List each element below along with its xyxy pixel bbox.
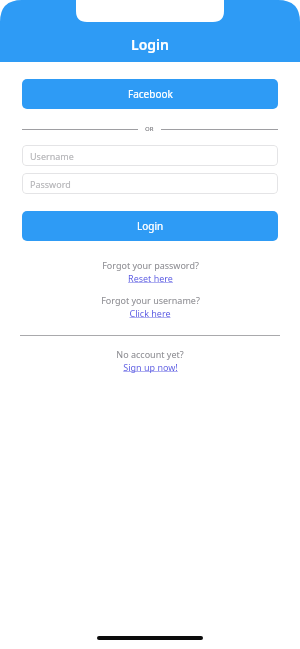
button[interactable]: Facebook xyxy=(22,79,278,109)
staticText: Reset here xyxy=(128,272,173,284)
staticText: Username xyxy=(30,150,74,162)
button[interactable]: Click here xyxy=(129,307,171,319)
button[interactable]: Username xyxy=(22,145,278,166)
button[interactable]: Reset here xyxy=(128,272,173,284)
staticText: Login xyxy=(137,219,164,233)
staticText: Click here xyxy=(129,307,171,319)
button[interactable]: Sign up now! xyxy=(123,361,178,373)
staticText: Sign up now! xyxy=(123,361,178,373)
button[interactable]: Login xyxy=(22,211,278,241)
staticText: OR xyxy=(145,125,154,133)
staticText: Login xyxy=(131,35,169,54)
staticText: Password xyxy=(30,178,71,190)
staticText: No account yet? xyxy=(116,348,184,360)
button[interactable]: Password xyxy=(22,173,278,194)
staticText: Forgot your username? xyxy=(101,294,200,306)
staticText: Forgot your password? xyxy=(102,259,199,271)
staticText: Facebook xyxy=(128,87,173,101)
